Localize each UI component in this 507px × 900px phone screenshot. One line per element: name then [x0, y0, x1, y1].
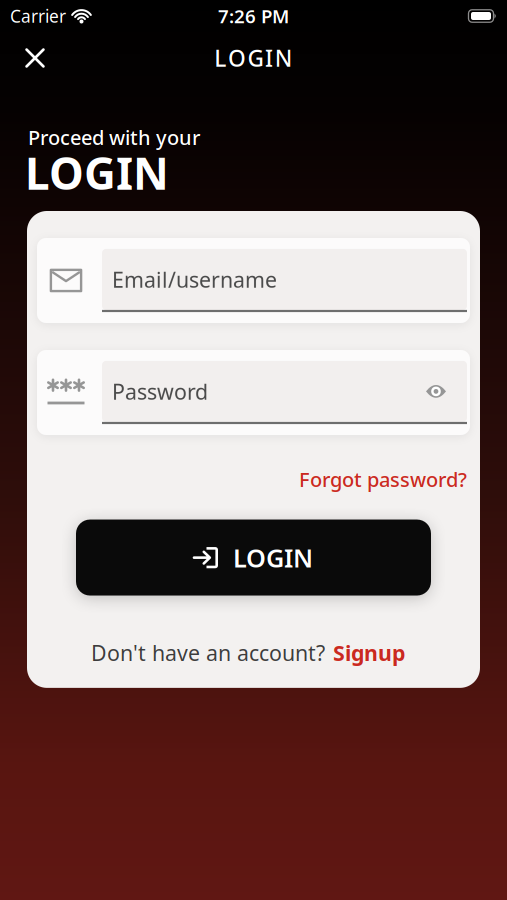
button[interactable]: Close	[25, 48, 45, 68]
button[interactable]: Show password	[426, 384, 446, 398]
staticText: Email/username	[112, 265, 277, 293]
button[interactable]: LOGIN	[76, 519, 431, 595]
button[interactable]: Password	[37, 350, 470, 435]
staticText: LOGIN	[233, 541, 313, 574]
staticText: Signup	[333, 638, 405, 667]
staticText: Password	[112, 377, 208, 405]
button[interactable]: Email/username	[37, 238, 470, 323]
staticText: Proceed with your	[28, 124, 200, 151]
staticText: LOGIN	[214, 43, 293, 73]
button[interactable]: Forgot password?	[299, 466, 467, 493]
staticText: LOGIN	[25, 144, 169, 202]
button[interactable]: Signup	[333, 638, 405, 667]
staticText: Forgot password?	[299, 466, 467, 493]
staticText: Carrier	[10, 4, 66, 27]
staticText: 7:26 PM	[218, 4, 289, 28]
staticText: Don't have an account?	[91, 638, 325, 667]
